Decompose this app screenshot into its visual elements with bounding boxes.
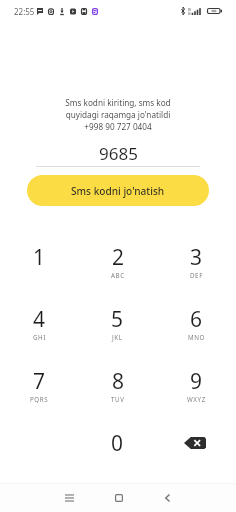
staticText: Sms kodni jo'natish bbox=[71, 184, 165, 198]
button[interactable]: 2 bbox=[78, 236, 157, 298]
staticText: 6 bbox=[190, 305, 203, 334]
staticText: 1 bbox=[33, 243, 46, 272]
staticText: 4 bbox=[33, 305, 46, 334]
staticText: 3 bbox=[190, 243, 203, 272]
button[interactable]: 1 bbox=[0, 236, 78, 298]
button[interactable]: 4 bbox=[0, 298, 78, 360]
button[interactable]: 5 bbox=[78, 298, 157, 360]
staticText: 8 bbox=[112, 367, 125, 396]
staticText: DEF bbox=[190, 271, 203, 279]
staticText: JKL bbox=[112, 333, 123, 341]
staticText: Sms kodni kiriting, sms kod quyidagi raq… bbox=[24, 97, 212, 132]
button[interactable]: 0 bbox=[78, 422, 157, 484]
staticText: MNO bbox=[188, 333, 205, 341]
button[interactable]: 3 bbox=[157, 236, 236, 298]
button[interactable]: 6 bbox=[157, 298, 236, 360]
button[interactable]: Back bbox=[155, 486, 179, 510]
button[interactable]: 7 bbox=[0, 360, 78, 422]
staticText: GHI bbox=[33, 333, 46, 341]
staticText: 9685 bbox=[99, 142, 138, 165]
staticText: 5 bbox=[111, 305, 124, 334]
button[interactable]: 9 bbox=[157, 360, 236, 422]
button[interactable]: Backspace bbox=[157, 422, 236, 484]
staticText: 9 bbox=[190, 367, 203, 396]
button[interactable]: Home bbox=[107, 486, 131, 510]
staticText: WXYZ bbox=[187, 395, 206, 403]
button[interactable]: 8 bbox=[78, 360, 157, 422]
staticText: TUV bbox=[111, 395, 125, 403]
button[interactable]: Sms kodni jo'natish bbox=[27, 175, 209, 206]
button[interactable]: Recent apps bbox=[57, 486, 81, 510]
staticText: PQRS bbox=[30, 395, 49, 403]
staticText: 2 bbox=[112, 243, 125, 272]
staticText: 7 bbox=[33, 367, 46, 396]
staticText: 0 bbox=[111, 429, 124, 458]
staticText: 22:55 bbox=[14, 6, 35, 17]
staticText: ABC bbox=[111, 271, 125, 279]
